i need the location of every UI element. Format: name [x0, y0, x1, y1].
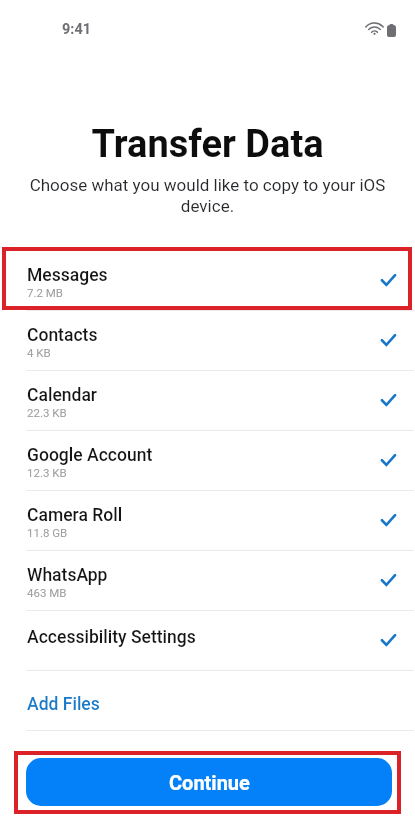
other: Selected [381, 334, 396, 346]
other: Selected [381, 394, 396, 406]
staticText: Choose what you would like to copy to yo… [14, 175, 401, 217]
other: Selected [381, 634, 396, 646]
staticText: WhatsApp [27, 565, 108, 586]
staticText: Camera Roll [27, 505, 123, 526]
other: Selected [381, 454, 396, 466]
staticText: Add Files [27, 694, 100, 715]
other: Selected [381, 574, 396, 586]
staticText: Transfer Data [0, 122, 415, 167]
staticText: Contacts [27, 325, 98, 346]
staticText: 9:41 [62, 21, 92, 38]
staticText: 7.2 MB [27, 286, 64, 299]
button[interactable]: Camera Roll [0, 491, 415, 550]
staticText: Accessibility Settings [27, 627, 196, 648]
button[interactable]: Calendar [0, 371, 415, 430]
staticText: Messages [27, 265, 108, 286]
button[interactable]: Google Account [0, 431, 415, 490]
button[interactable]: Add Files [0, 671, 415, 730]
other: Selected [381, 514, 396, 526]
staticText: Calendar [27, 385, 98, 406]
staticText: Google Account [27, 445, 153, 466]
other: Wi-Fi [367, 24, 382, 35]
staticText: 22.3 KB [27, 406, 67, 419]
staticText: 12.3 KB [27, 466, 67, 479]
staticText: 463 MB [27, 586, 67, 599]
staticText: 4 KB [27, 346, 51, 359]
staticText: Continue [169, 771, 250, 794]
other: Selected [381, 274, 396, 286]
other: Battery [387, 24, 396, 37]
button[interactable]: Accessibility Settings [0, 611, 415, 670]
staticText: 11.8 GB [27, 526, 68, 539]
button[interactable]: WhatsApp [0, 551, 415, 610]
button[interactable]: Messages [0, 251, 415, 310]
button[interactable]: Continue [26, 758, 392, 806]
button[interactable]: Contacts [0, 311, 415, 370]
